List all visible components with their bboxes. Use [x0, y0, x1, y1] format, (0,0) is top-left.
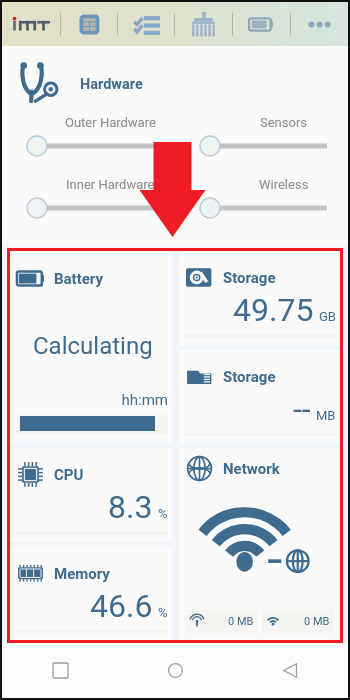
- button[interactable]: iMT: [2, 2, 60, 46]
- staticText: 0 MB: [304, 615, 330, 628]
- button[interactable]: Sensors: [175, 115, 348, 161]
- button[interactable]: Battery saver: [233, 2, 290, 46]
- staticText: Memory: [54, 565, 110, 583]
- button[interactable]: Wireless: [175, 177, 348, 223]
- staticText: 8.3: [108, 488, 153, 526]
- staticText: Battery: [54, 270, 104, 288]
- button[interactable]: Back: [233, 643, 348, 698]
- staticText: GB: [319, 309, 336, 324]
- button[interactable]: Battery: [10, 251, 172, 443]
- staticText: Calculating: [33, 332, 168, 360]
- button[interactable]: Hardware: [2, 46, 348, 110]
- button[interactable]: Home: [118, 643, 233, 698]
- button[interactable]: More options: [291, 2, 348, 46]
- button[interactable]: Storage: [179, 251, 340, 345]
- button[interactable]: Outer Hardware: [2, 115, 175, 161]
- staticText: Storage: [223, 269, 276, 287]
- staticText: %: [158, 605, 168, 620]
- staticText: hh:mm: [17, 391, 168, 409]
- button[interactable]: Clean: [175, 2, 232, 46]
- button[interactable]: Storage: [179, 350, 340, 443]
- staticText: %: [158, 506, 168, 521]
- staticText: Storage: [223, 368, 276, 386]
- staticText: 46.6: [90, 587, 153, 625]
- button[interactable]: Tasks: [118, 2, 174, 46]
- staticText: 49.75: [233, 291, 314, 329]
- button[interactable]: Dashboard: [61, 2, 117, 46]
- staticText: Sensors: [260, 115, 308, 130]
- button[interactable]: Memory: [10, 547, 172, 640]
- button[interactable]: Inner Hardware: [2, 177, 175, 223]
- button[interactable]: Network: [179, 448, 340, 640]
- staticText: --: [293, 390, 311, 428]
- staticText: Outer Hardware: [65, 115, 156, 130]
- staticText: Network: [223, 460, 280, 478]
- staticText: 0 MB: [228, 615, 254, 628]
- staticText: Hardware: [80, 76, 143, 93]
- staticText: CPU: [54, 466, 84, 484]
- button[interactable]: Recent apps: [2, 643, 118, 698]
- staticText: MB: [316, 408, 336, 423]
- staticText: Inner Hardware: [66, 177, 155, 192]
- staticText: Wireless: [259, 177, 309, 192]
- button[interactable]: CPU: [10, 448, 172, 542]
